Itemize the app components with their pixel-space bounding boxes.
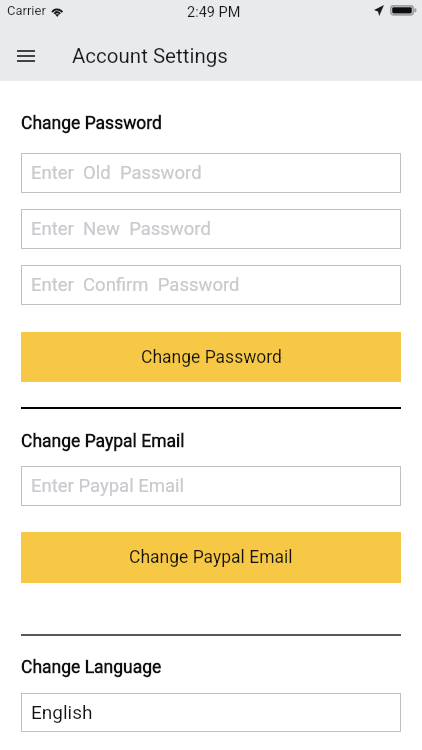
button[interactable]: Enter New Password — [21, 209, 401, 249]
button[interactable]: Change Paypal Email — [21, 532, 401, 583]
staticText: Account Settings — [72, 44, 228, 68]
button[interactable]: English — [21, 693, 401, 732]
staticText: Enter New Password — [31, 218, 211, 240]
button[interactable]: Enter Confirm Password — [21, 265, 401, 305]
button[interactable]: Menu — [4, 34, 48, 78]
button[interactable]: Change Password — [21, 332, 401, 382]
staticText: Change Password — [21, 113, 162, 134]
staticText: English — [31, 701, 93, 723]
button[interactable]: Enter Old Password — [21, 153, 401, 193]
staticText: Enter Confirm Password — [31, 274, 240, 296]
staticText: Enter Paypal Email — [31, 475, 185, 497]
staticText: Change Password — [141, 347, 282, 368]
staticText: 2:49 PM — [187, 4, 241, 21]
staticText: Carrier — [7, 3, 46, 18]
staticText: Enter Old Password — [31, 162, 202, 184]
staticText: Change Paypal Email — [129, 547, 293, 568]
staticText: Change Language — [21, 657, 162, 678]
button[interactable]: Enter Paypal Email — [21, 466, 401, 506]
staticText: Change Paypal Email — [21, 431, 185, 452]
